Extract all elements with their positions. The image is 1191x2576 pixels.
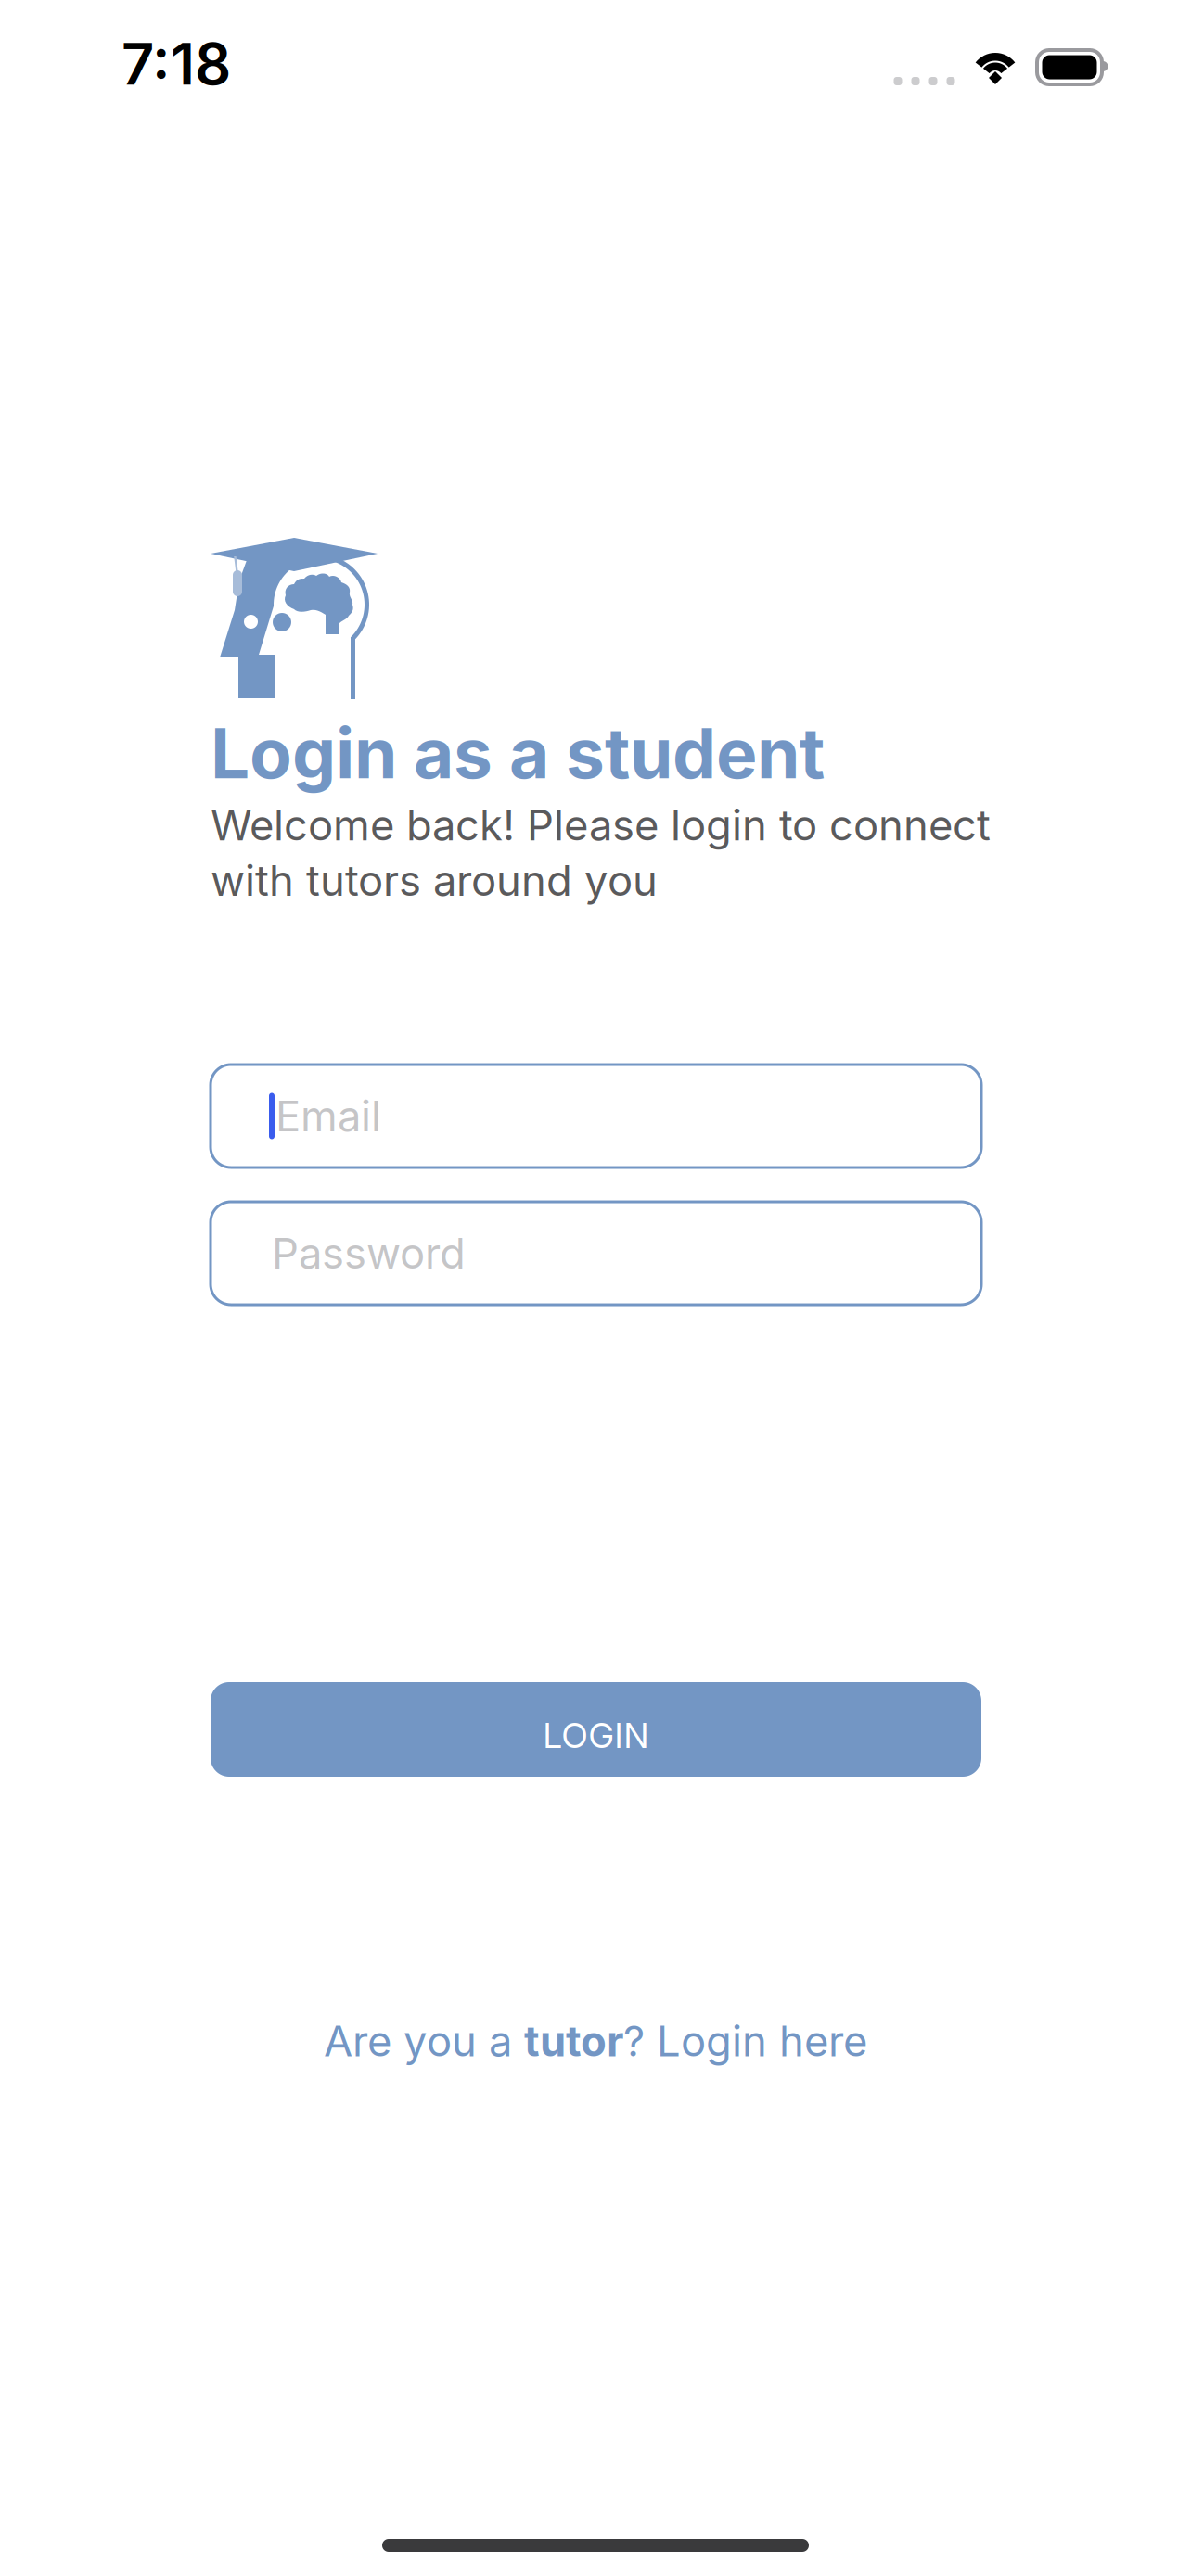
staticText: Password [272, 1228, 466, 1279]
button[interactable]: Password [211, 1202, 981, 1305]
staticText: 7:18 [122, 30, 231, 98]
staticText: Login as a student [211, 711, 825, 795]
button[interactable]: Are you a tutor? Login here [0, 2009, 1191, 2073]
staticText: Email [275, 1091, 381, 1141]
staticText: LOGIN [543, 1714, 649, 1756]
staticText: Are you a tutor? Login here [324, 2016, 867, 2066]
staticText: Welcome back! Please login to connect wi… [211, 800, 991, 906]
button[interactable]: LOGIN [211, 1682, 981, 1777]
button[interactable]: Email [211, 1065, 981, 1167]
